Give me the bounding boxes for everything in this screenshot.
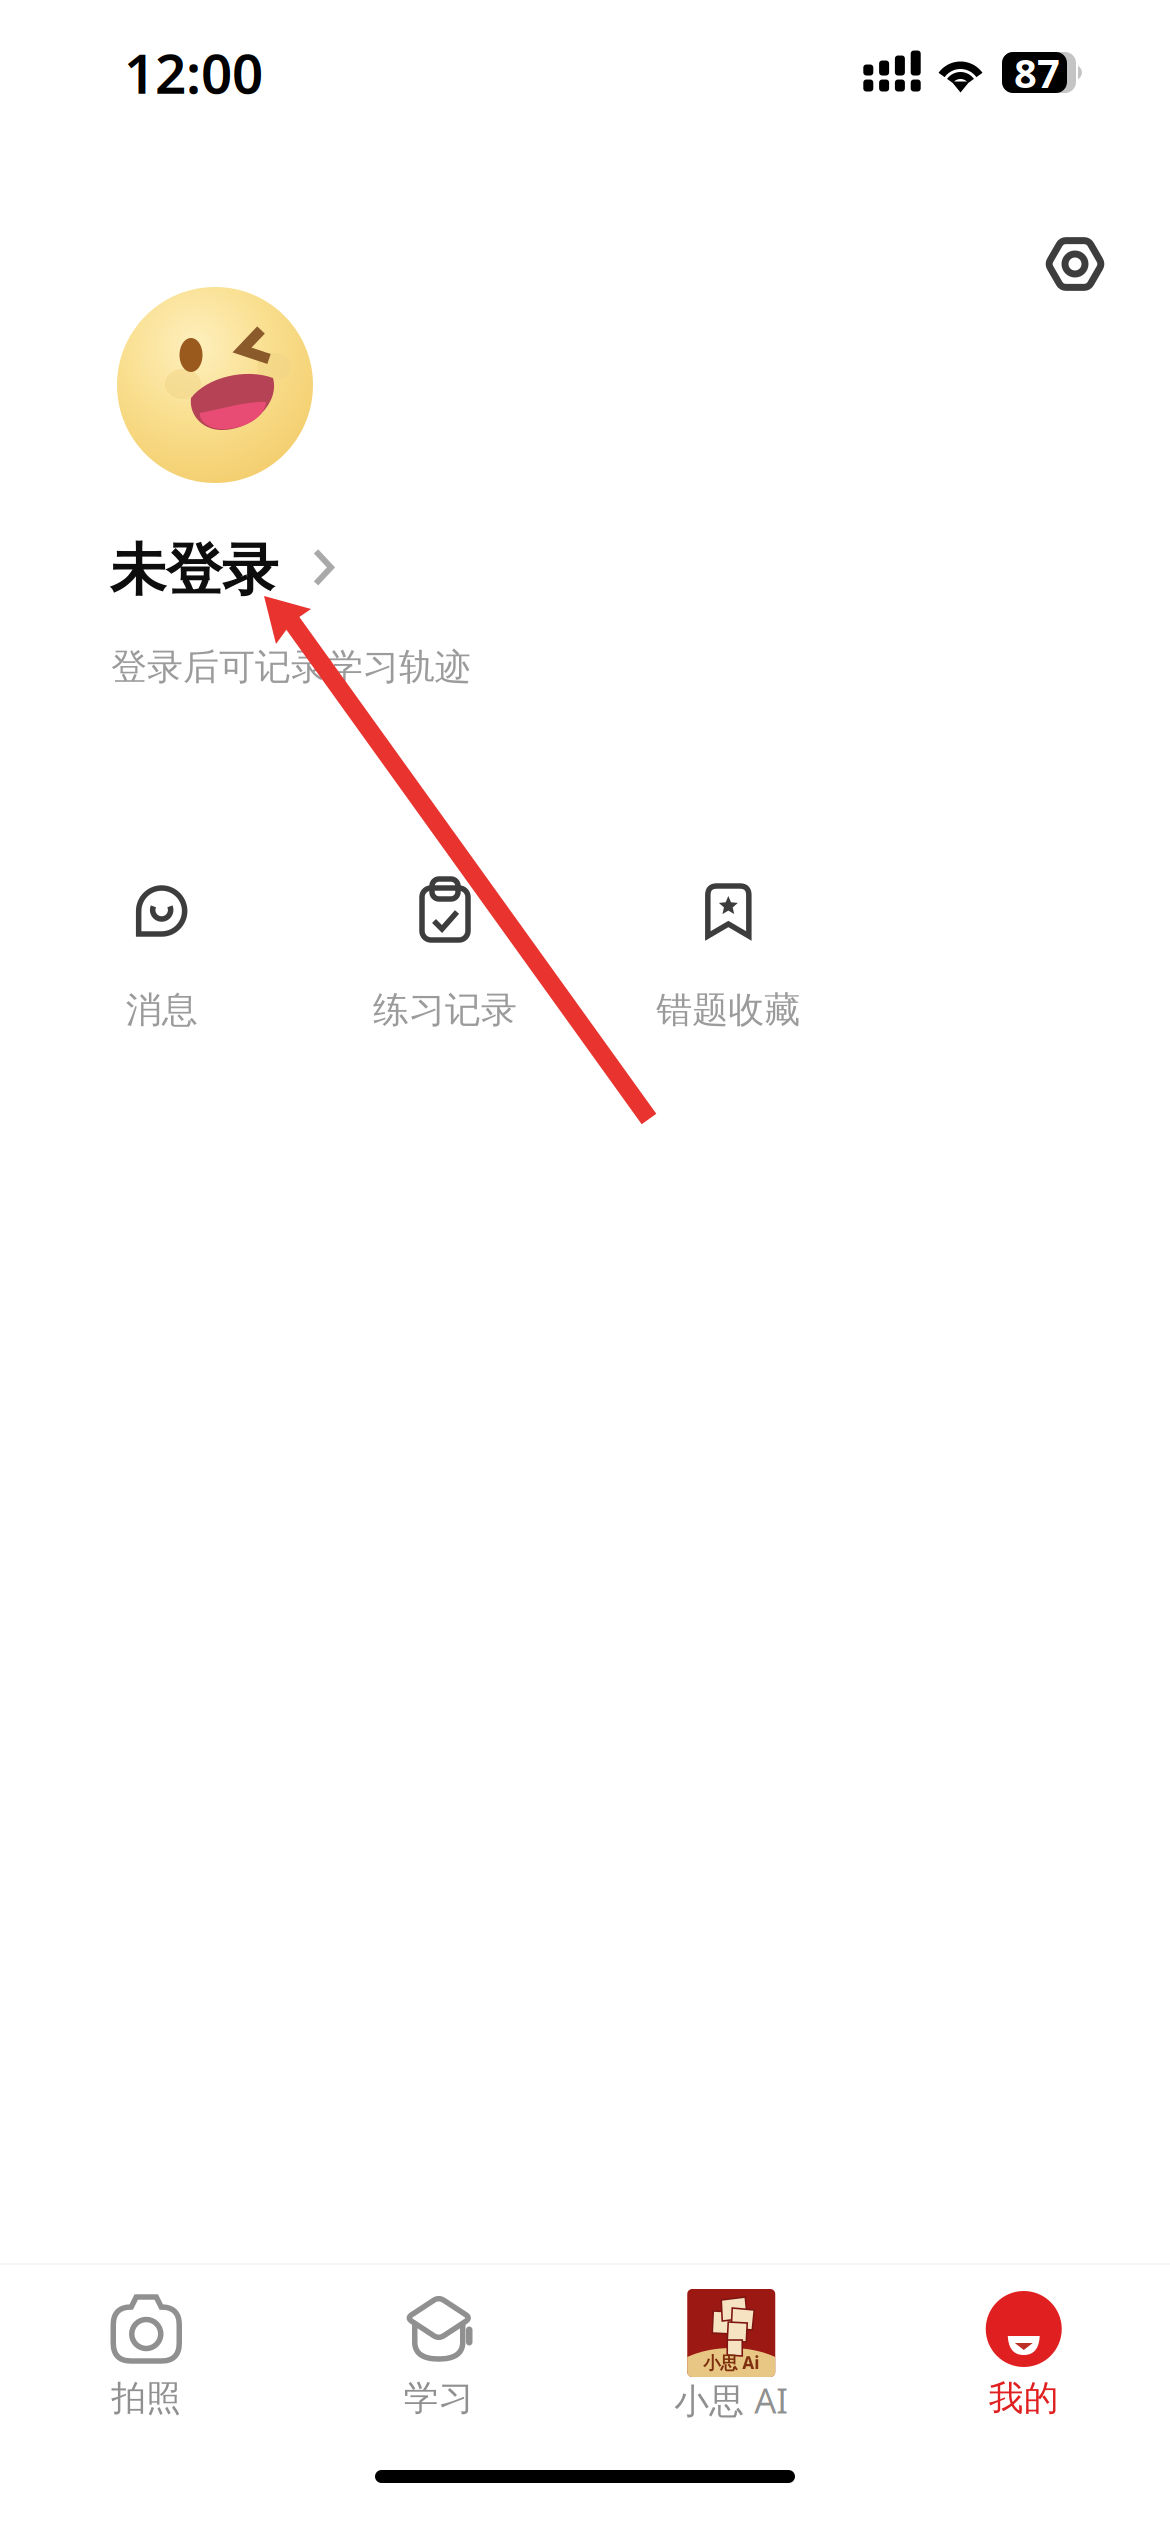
- button[interactable]: 我的: [877, 2265, 1170, 2425]
- button[interactable]: 未登录: [110, 530, 335, 611]
- staticText: 小思 AI: [674, 2377, 788, 2423]
- staticText: 拍照: [111, 2377, 181, 2420]
- staticText: 错题收藏: [656, 988, 800, 1032]
- button[interactable]: 练习记录: [303, 872, 587, 1042]
- staticText: 登录后可记录学习轨迹: [111, 645, 471, 689]
- staticText: 未登录: [110, 536, 278, 605]
- button[interactable]: 消息: [20, 872, 303, 1042]
- button[interactable]: 拍照: [0, 2265, 292, 2425]
- staticText: 练习记录: [373, 988, 517, 1032]
- staticText: 12:00: [124, 36, 263, 109]
- staticText: 87: [1014, 46, 1060, 99]
- button[interactable]: Settings: [1018, 208, 1132, 320]
- button[interactable]: Profile photo: [117, 287, 313, 483]
- button[interactable]: 错题收藏: [587, 872, 870, 1042]
- staticText: 消息: [126, 988, 198, 1032]
- button[interactable]: 学习: [292, 2265, 585, 2425]
- staticText: 学习: [404, 2377, 474, 2420]
- button[interactable]: 小思 Ai: [585, 2265, 877, 2425]
- staticText: 小思 Ai: [703, 2351, 759, 2374]
- staticText: 我的: [989, 2377, 1059, 2420]
